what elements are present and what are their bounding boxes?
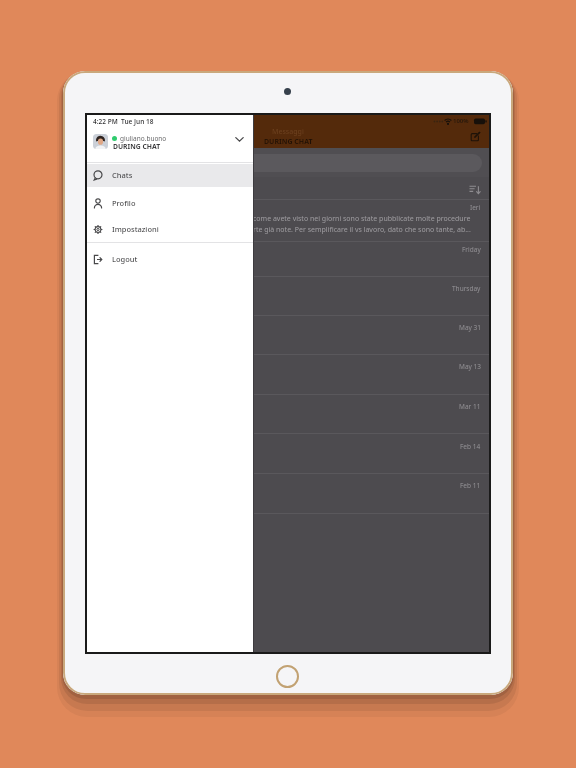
staticText: Chats: [112, 170, 133, 180]
button[interactable]: [469, 185, 481, 195]
button[interactable]: Logout: [87, 248, 253, 271]
staticText: Ieri: [470, 203, 481, 212]
button[interactable]: Impostazioni: [87, 218, 253, 241]
staticText: Feb 11: [460, 481, 481, 490]
button[interactable]: [470, 131, 481, 142]
staticText: May 13: [459, 362, 481, 371]
staticText: Impostazioni: [112, 224, 159, 234]
staticText: May 31: [459, 323, 481, 332]
staticText: come avete visto nei giorni sono state p…: [253, 214, 473, 224]
staticText: Logout: [112, 254, 138, 264]
staticText: Feb 14: [460, 442, 481, 451]
staticText: Profilo: [112, 198, 136, 208]
staticText: 100%: [453, 117, 469, 125]
staticText: rte già note. Per semplificare il vs lav…: [253, 225, 471, 235]
staticText: DURING CHAT: [113, 142, 161, 151]
staticText: Messaggi: [272, 127, 304, 137]
staticText: DURING CHAT: [264, 137, 313, 147]
button[interactable]: [87, 129, 253, 155]
staticText: Thursday: [452, 284, 481, 293]
button[interactable]: [95, 154, 482, 172]
staticText: Friday: [462, 245, 481, 254]
staticText: giuliano.buono: [120, 134, 167, 143]
staticText: 4:22 PM Tue Jun 18: [93, 117, 154, 126]
staticText: Mar 11: [459, 402, 481, 411]
button[interactable]: Profilo: [87, 192, 253, 215]
button[interactable]: Chats: [87, 164, 253, 187]
